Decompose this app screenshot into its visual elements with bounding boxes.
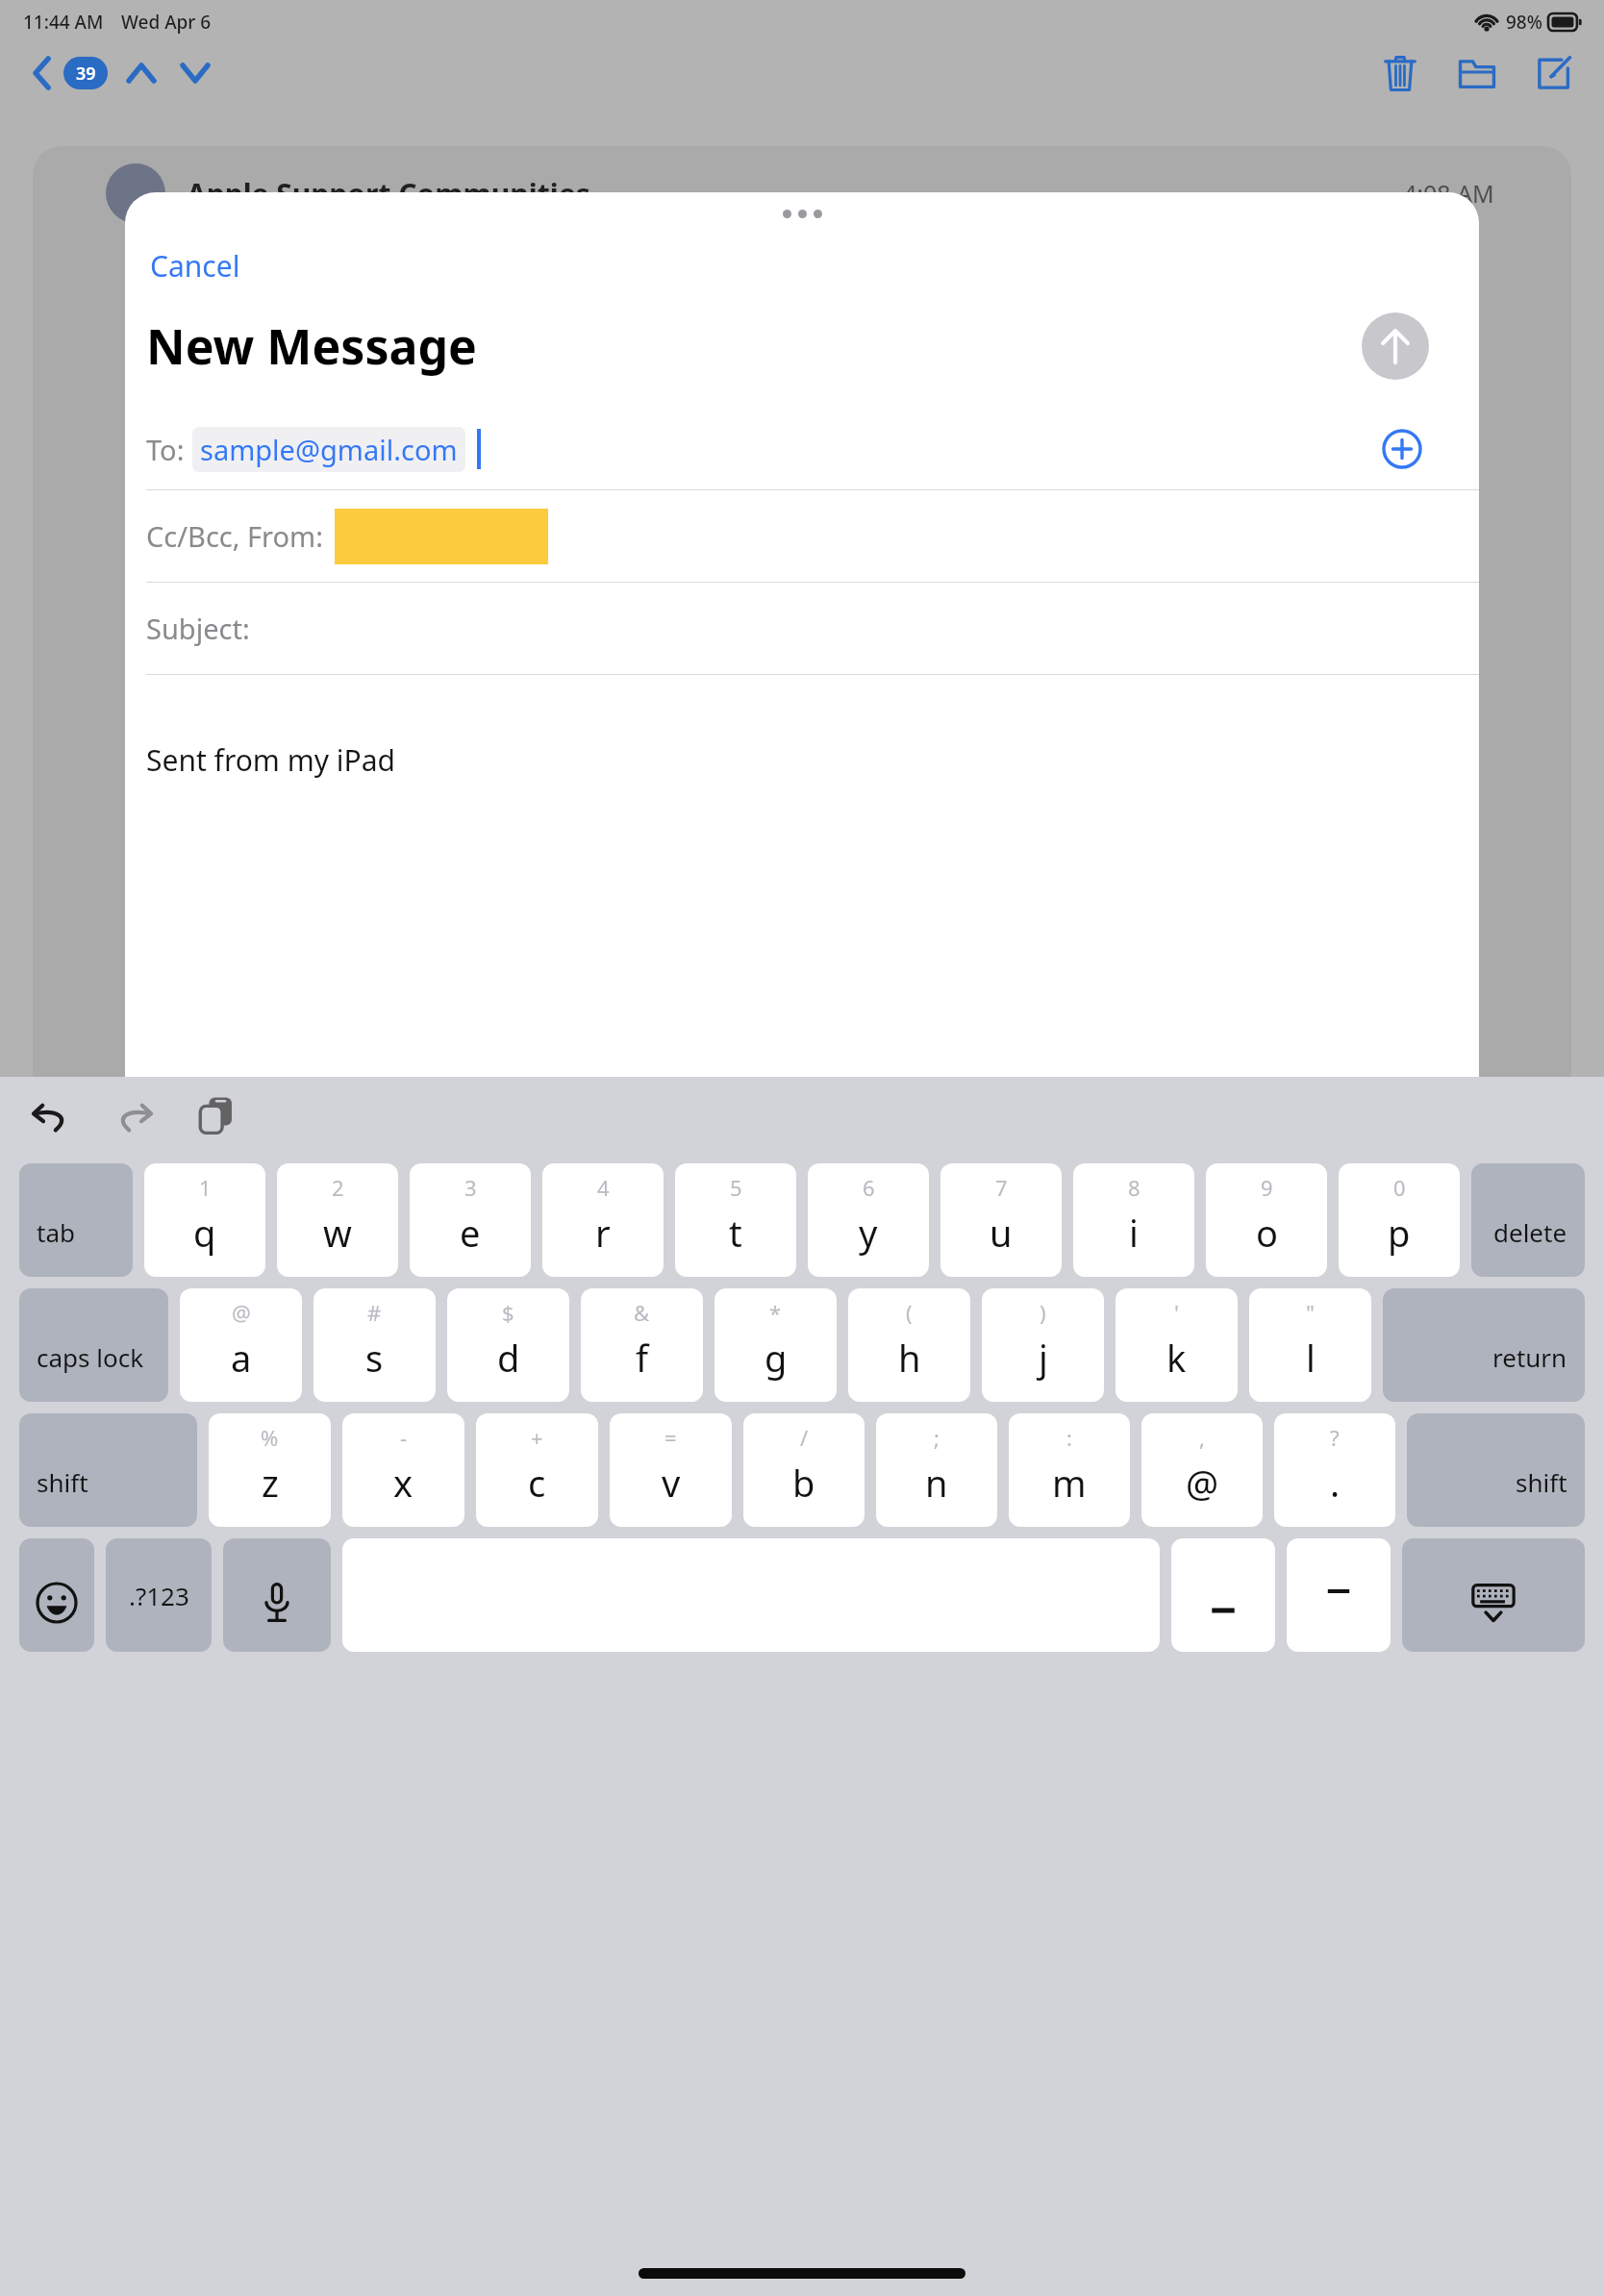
button[interactable]: Undo bbox=[21, 1086, 81, 1145]
button[interactable]: 5 bbox=[675, 1163, 796, 1277]
button[interactable]: Delete bbox=[1371, 44, 1429, 102]
staticText: ) bbox=[1040, 1298, 1046, 1327]
button[interactable]: ? bbox=[1274, 1413, 1395, 1527]
button[interactable]: Emoji bbox=[19, 1538, 94, 1652]
staticText: 0 bbox=[1393, 1173, 1406, 1202]
staticText: 4:08 AM bbox=[1403, 177, 1494, 210]
button[interactable]: Underscore bbox=[1171, 1538, 1275, 1652]
staticText: 9 bbox=[1261, 1173, 1273, 1202]
button[interactable]: Hyphen bbox=[1287, 1538, 1391, 1652]
button[interactable]: Send bbox=[1362, 312, 1429, 380]
staticText: Subject: bbox=[146, 610, 250, 647]
staticText: b bbox=[792, 1458, 815, 1508]
staticText: ( bbox=[906, 1298, 913, 1327]
button[interactable]: * bbox=[714, 1288, 837, 1402]
staticText: d bbox=[497, 1333, 520, 1383]
staticText: c bbox=[528, 1458, 546, 1508]
button[interactable]: .?123 bbox=[106, 1538, 212, 1652]
staticText: @ bbox=[232, 1298, 251, 1327]
staticText: 7 bbox=[995, 1173, 1008, 1202]
button[interactable]: @ bbox=[180, 1288, 302, 1402]
button[interactable]: shift bbox=[19, 1413, 197, 1527]
staticText: x bbox=[393, 1458, 414, 1508]
button[interactable]: return bbox=[1383, 1288, 1585, 1402]
button[interactable]: , bbox=[1141, 1413, 1263, 1527]
button[interactable]: caps lock bbox=[19, 1288, 168, 1402]
button[interactable]: shift bbox=[1407, 1413, 1585, 1527]
button[interactable]: 2 bbox=[277, 1163, 398, 1277]
button[interactable]: Next message bbox=[171, 49, 219, 97]
button[interactable]: = bbox=[610, 1413, 732, 1527]
staticText: 3 bbox=[464, 1173, 477, 1202]
button[interactable]: Paste bbox=[187, 1086, 246, 1145]
staticText: z bbox=[262, 1458, 279, 1508]
button[interactable]: Previous message bbox=[117, 49, 165, 97]
button[interactable]: 39 bbox=[63, 57, 108, 89]
staticText: .?123 bbox=[129, 1579, 189, 1612]
staticText: p bbox=[1388, 1208, 1411, 1258]
button[interactable]: Redo bbox=[104, 1086, 163, 1145]
staticText: sample@gmail.com bbox=[200, 431, 458, 468]
staticText: % bbox=[261, 1423, 279, 1452]
staticText: l bbox=[1306, 1333, 1316, 1383]
button[interactable]: 3 bbox=[410, 1163, 531, 1277]
button[interactable]: 6 bbox=[808, 1163, 929, 1277]
staticText: ? bbox=[1330, 1423, 1340, 1452]
button[interactable]: Dictate bbox=[223, 1538, 331, 1652]
staticText: & bbox=[634, 1298, 650, 1327]
button[interactable]: ( bbox=[848, 1288, 970, 1402]
button[interactable]: Move to folder bbox=[1448, 44, 1506, 102]
button[interactable]: ' bbox=[1115, 1288, 1238, 1402]
staticText: shift bbox=[37, 1465, 88, 1499]
staticText: 5 bbox=[730, 1173, 742, 1202]
staticText: ; bbox=[934, 1423, 940, 1452]
staticText: k bbox=[1166, 1333, 1187, 1383]
button[interactable]: + bbox=[476, 1413, 598, 1527]
staticText: * bbox=[769, 1298, 782, 1327]
button[interactable]: 0 bbox=[1339, 1163, 1460, 1277]
button[interactable]: sample@gmail.com bbox=[200, 431, 458, 468]
button[interactable]: ; bbox=[876, 1413, 997, 1527]
button[interactable]: / bbox=[743, 1413, 865, 1527]
button[interactable]: : bbox=[1009, 1413, 1130, 1527]
staticText: $ bbox=[502, 1298, 514, 1327]
button[interactable]: 7 bbox=[940, 1163, 1062, 1277]
button[interactable]: delete bbox=[1471, 1163, 1585, 1277]
button[interactable]: # bbox=[313, 1288, 436, 1402]
button[interactable]: ) bbox=[982, 1288, 1104, 1402]
button[interactable]: Compose bbox=[1525, 44, 1583, 102]
button[interactable]: Back bbox=[21, 52, 63, 94]
staticText: 39 bbox=[76, 62, 96, 86]
staticText: m bbox=[1052, 1458, 1087, 1508]
staticText: tab bbox=[37, 1215, 75, 1249]
button[interactable]: " bbox=[1249, 1288, 1371, 1402]
staticText: : bbox=[1066, 1423, 1072, 1452]
button[interactable]: Hide keyboard bbox=[1402, 1538, 1585, 1652]
staticText: e bbox=[460, 1208, 481, 1258]
staticText: Cancel bbox=[150, 246, 240, 286]
button[interactable]: Space bbox=[342, 1538, 1160, 1652]
button[interactable]: 4 bbox=[542, 1163, 664, 1277]
staticText: 1 bbox=[199, 1173, 212, 1202]
staticText: # bbox=[367, 1298, 382, 1327]
staticText: 6 bbox=[863, 1173, 875, 1202]
button[interactable]: 9 bbox=[1206, 1163, 1327, 1277]
button[interactable]: tab bbox=[19, 1163, 133, 1277]
button[interactable]: $ bbox=[447, 1288, 569, 1402]
button[interactable]: Cancel bbox=[146, 240, 244, 291]
button[interactable]: % bbox=[209, 1413, 331, 1527]
staticText: 8 bbox=[1128, 1173, 1140, 1202]
staticText: y bbox=[859, 1208, 878, 1258]
button[interactable]: - bbox=[342, 1413, 464, 1527]
staticText: . bbox=[1330, 1458, 1341, 1508]
staticText: Cc/Bcc, From: bbox=[146, 517, 323, 555]
staticText: u bbox=[990, 1208, 1013, 1258]
button[interactable]: & bbox=[581, 1288, 703, 1402]
staticText: Sent from my iPad bbox=[146, 740, 395, 780]
staticText: q bbox=[193, 1208, 216, 1258]
button[interactable]: Add contact bbox=[1375, 422, 1429, 476]
button[interactable]: 1 bbox=[144, 1163, 265, 1277]
button[interactable]: 8 bbox=[1073, 1163, 1194, 1277]
staticText: 4 bbox=[597, 1173, 610, 1202]
staticText: ' bbox=[1174, 1298, 1179, 1327]
